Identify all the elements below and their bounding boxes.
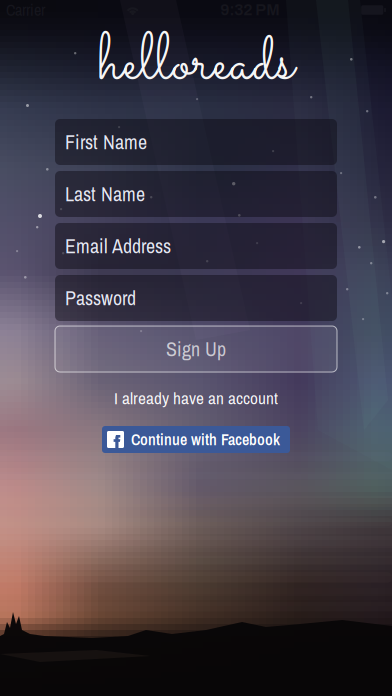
button[interactable]: I already have an account	[55, 388, 337, 408]
staticText: Carrier	[6, 0, 45, 21]
staticText: I already have an account	[114, 386, 278, 410]
button[interactable]: First Name	[55, 119, 337, 165]
staticText: Sign Up	[166, 335, 226, 362]
staticText: Email Address	[65, 232, 171, 259]
staticText: Continue with Facebook	[131, 429, 280, 450]
button[interactable]: Last Name	[55, 171, 337, 217]
button[interactable]: Password	[55, 275, 337, 321]
button[interactable]: Email Address	[55, 223, 337, 269]
staticText: Last Name	[65, 180, 145, 207]
button[interactable]: Sign Up	[55, 326, 337, 372]
staticText: helloreads	[98, 16, 294, 114]
staticText: 9:32 PM	[220, 1, 280, 19]
staticText: First Name	[65, 128, 147, 155]
button[interactable]: Continue with Facebook	[102, 426, 290, 453]
staticText: Password	[65, 284, 136, 311]
